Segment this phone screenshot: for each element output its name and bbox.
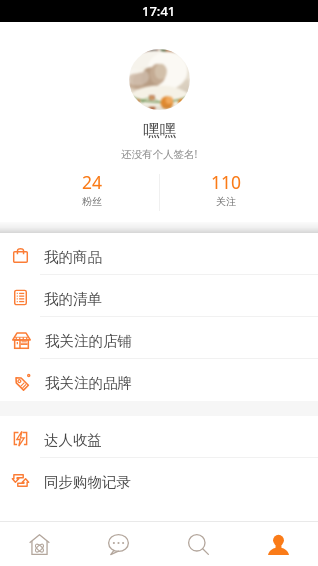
staticText: 我关注的品牌 [45, 374, 132, 392]
button[interactable]: Home [0, 522, 79, 566]
staticText: 我的商品 [44, 248, 102, 266]
staticText: 关注 [216, 195, 236, 208]
button[interactable]: 达人收益 [0, 416, 318, 458]
button[interactable]: Messages [79, 522, 158, 566]
button[interactable]: 我关注的品牌 [0, 359, 318, 401]
button[interactable]: Profile [238, 522, 318, 566]
staticText: 17:41 [142, 2, 176, 20]
staticText: 嘿嘿 [143, 120, 176, 141]
button[interactable]: 24 [25, 170, 159, 208]
button[interactable]: 我的商品 [0, 233, 318, 275]
staticText: 还没有个人签名! [121, 147, 198, 161]
button[interactable]: 我关注的店铺 [0, 317, 318, 359]
staticText: 我关注的店铺 [45, 332, 132, 350]
staticText: 24 [82, 170, 103, 194]
staticText: 粉丝 [82, 195, 102, 208]
staticText: 110 [211, 170, 242, 194]
button[interactable]: 同步购物记录 [0, 458, 318, 500]
button[interactable]: 我的清单 [0, 275, 318, 317]
staticText: 同步购物记录 [44, 473, 131, 491]
button[interactable]: Search [158, 522, 238, 566]
staticText: 达人收益 [44, 431, 102, 449]
button[interactable]: 110 [159, 170, 293, 208]
staticText: 我的清单 [44, 290, 102, 308]
